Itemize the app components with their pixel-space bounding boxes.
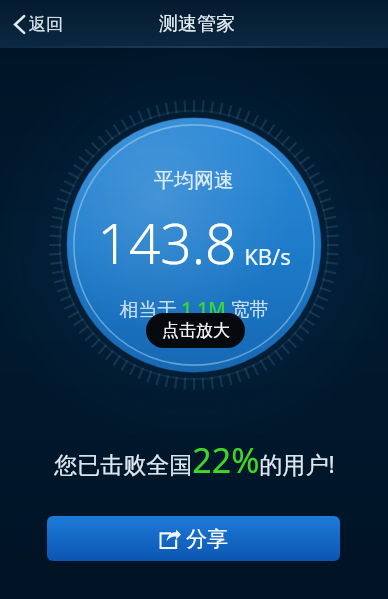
button[interactable]: 点击放大 bbox=[146, 313, 245, 348]
staticText: 返回 bbox=[29, 14, 63, 35]
staticText: 平均网速 bbox=[154, 168, 234, 193]
staticText: 您已击败全国22%的用户! bbox=[54, 437, 335, 483]
staticText: KB/s bbox=[244, 241, 291, 271]
button[interactable]: 分享 bbox=[47, 516, 340, 561]
staticText: 测速管家 bbox=[159, 12, 235, 36]
staticText: 143.8 bbox=[97, 205, 237, 280]
staticText: 点击放大 bbox=[162, 320, 230, 341]
staticText: 分享 bbox=[186, 526, 228, 552]
button[interactable]: 返回 bbox=[8, 8, 69, 41]
button[interactable]: 点击放大 bbox=[47, 98, 341, 392]
staticText: 相当于 1.1M 宽带 bbox=[119, 296, 269, 322]
